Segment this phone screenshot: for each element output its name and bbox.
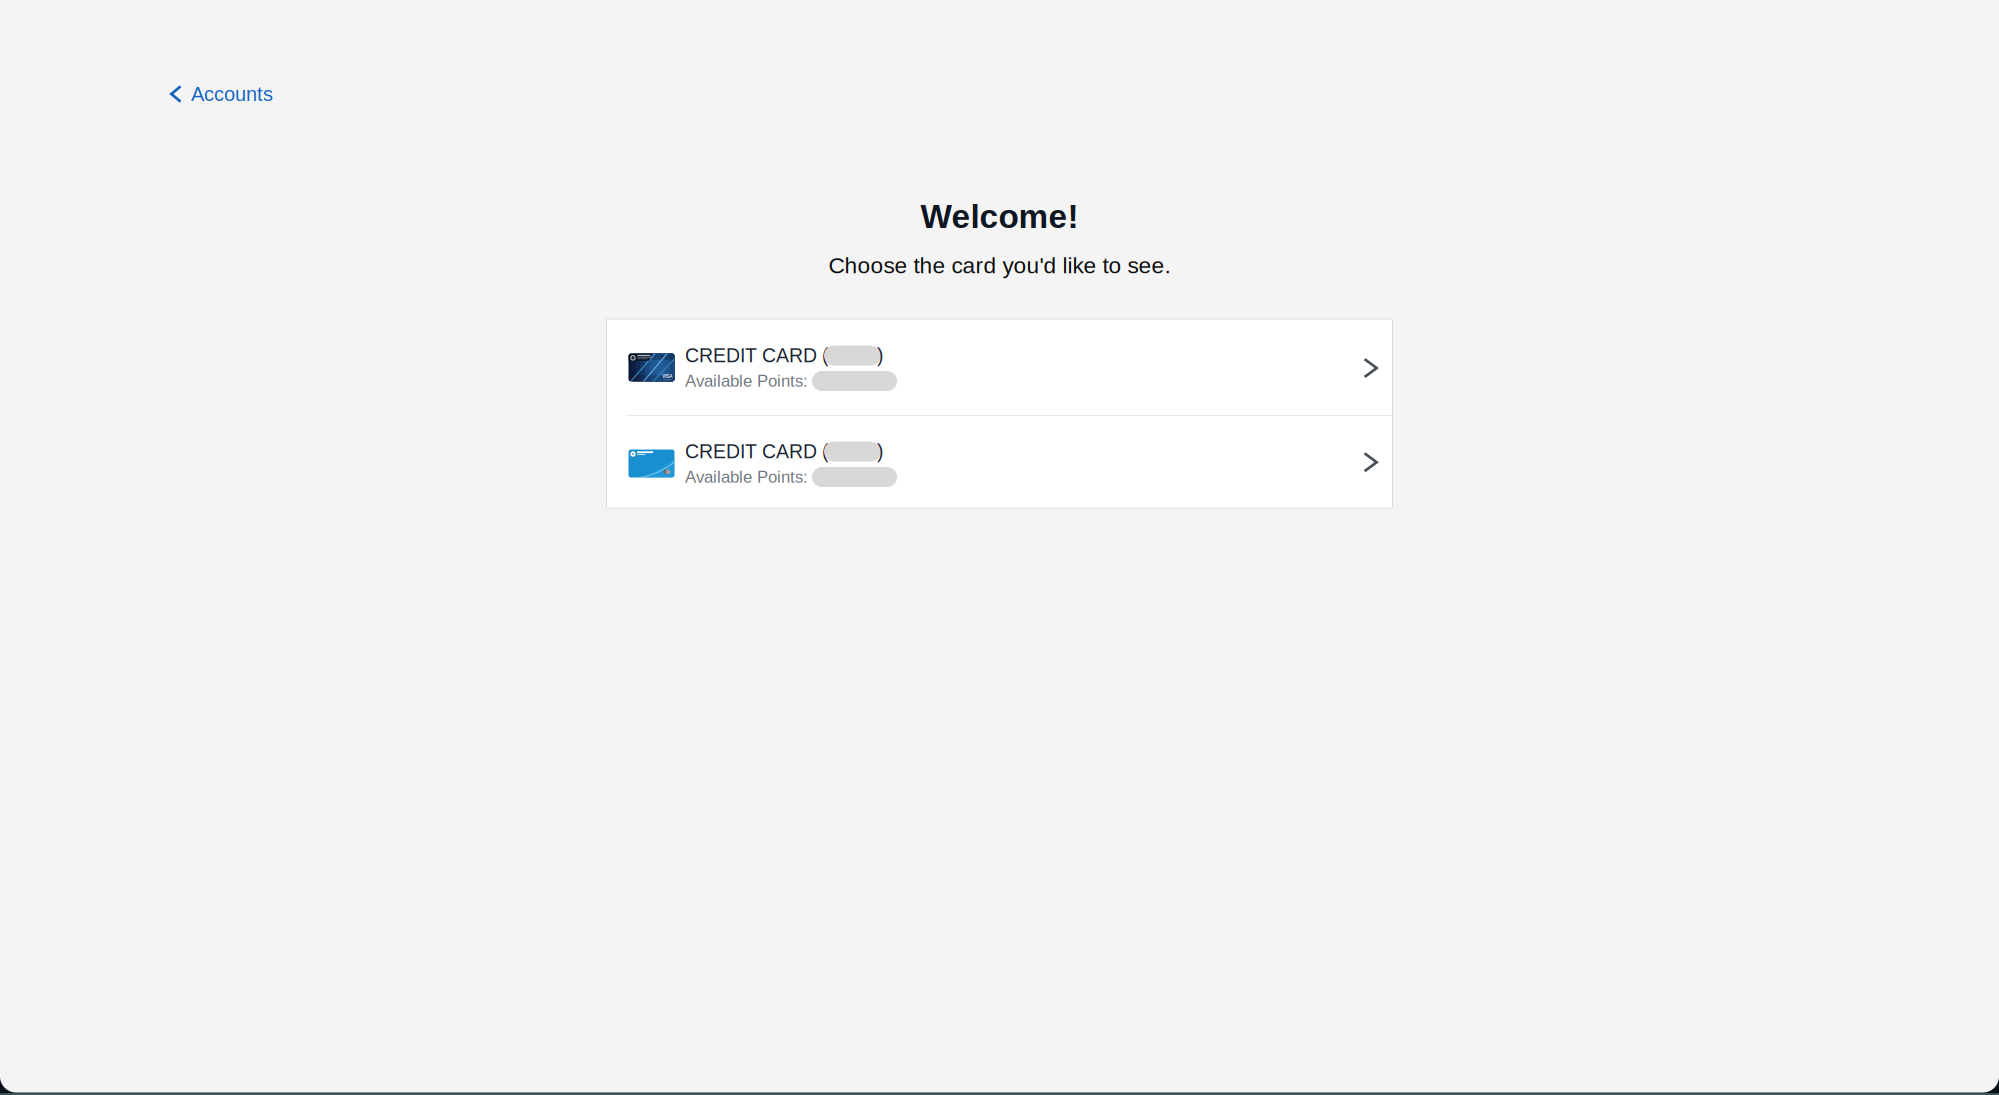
button[interactable]: Accounts: [0, 76, 289, 112]
staticText: Available Points:: [685, 468, 808, 486]
staticText: CREDIT CARD (: [685, 441, 828, 462]
staticText: ): [877, 345, 883, 366]
button[interactable]: VISA: [606, 319, 1392, 415]
staticText: Choose the card you'd like to see.: [828, 253, 1170, 278]
button[interactable]: CREDIT CARD (: [606, 416, 1392, 508]
staticText: Welcome!: [920, 198, 1078, 235]
staticText: ): [877, 441, 883, 462]
staticText: CREDIT CARD (: [685, 345, 828, 366]
staticText: VISA: [662, 373, 672, 379]
staticText: Accounts: [191, 83, 273, 105]
staticText: Available Points:: [685, 372, 808, 390]
